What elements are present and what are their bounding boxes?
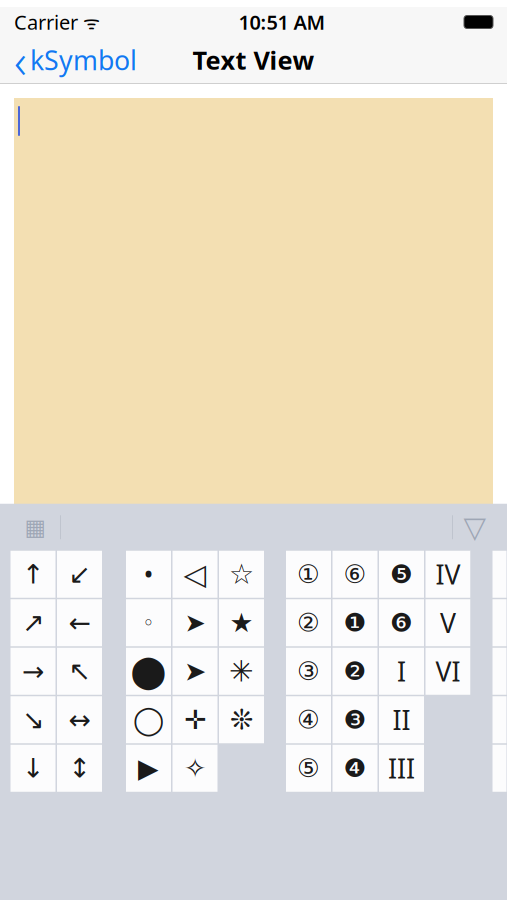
- button[interactable]: I: [379, 648, 424, 695]
- staticText: ↘: [22, 705, 44, 735]
- staticText: ②: [297, 608, 320, 637]
- button[interactable]: •: [126, 551, 171, 598]
- button[interactable]: ❶: [332, 599, 377, 646]
- button[interactable]: ➤: [172, 648, 217, 695]
- staticText: I: [397, 653, 406, 689]
- staticText: ❊: [230, 704, 253, 736]
- button[interactable]: ←: [57, 599, 102, 646]
- staticText: ↙: [68, 559, 90, 589]
- staticText: II: [392, 702, 410, 737]
- staticText: Carrier: [14, 9, 78, 35]
- button[interactable]: ↘: [10, 696, 55, 743]
- button[interactable]: ❺: [379, 551, 424, 598]
- staticText: ↓: [22, 753, 44, 783]
- button[interactable]: ↖: [57, 648, 102, 695]
- button[interactable]: ✧: [172, 745, 217, 792]
- staticText: ᯤ: [78, 10, 100, 34]
- staticText: ↔: [68, 705, 90, 735]
- staticText: III: [388, 750, 415, 786]
- staticText: ❶: [343, 608, 366, 637]
- button[interactable]: ↔: [57, 696, 102, 743]
- button[interactable]: ❻: [379, 599, 424, 646]
- button[interactable]: VI: [425, 648, 470, 695]
- button[interactable]: ◁: [172, 551, 217, 598]
- staticText: ❷: [343, 657, 366, 686]
- button[interactable]: →: [10, 648, 55, 695]
- button[interactable]: Hide keyboard: [453, 507, 497, 547]
- staticText: ←: [68, 608, 90, 638]
- staticText: ③: [297, 657, 320, 686]
- staticText: ⑤: [297, 754, 320, 783]
- button[interactable]: ‹: [0, 37, 147, 83]
- button[interactable]: ⑤: [286, 745, 331, 792]
- button[interactable]: ↙: [57, 551, 102, 598]
- staticText: →: [22, 656, 44, 686]
- button[interactable]: ↑: [10, 551, 55, 598]
- staticText: ◯: [133, 704, 164, 736]
- button[interactable]: ◯: [126, 696, 171, 743]
- button[interactable]: ③: [286, 648, 331, 695]
- button[interactable]: IV: [425, 551, 470, 598]
- button[interactable]: II: [379, 696, 424, 743]
- staticText: ◁: [183, 558, 206, 591]
- staticText: ➤: [184, 656, 206, 686]
- staticText: ↑: [22, 559, 44, 589]
- button[interactable]: ⬤: [126, 648, 171, 695]
- button[interactable]: ④: [286, 696, 331, 743]
- staticText: Text View: [192, 43, 314, 77]
- staticText: VI: [435, 653, 460, 689]
- staticText: ‹: [14, 28, 27, 92]
- staticText: ④: [297, 705, 320, 734]
- staticText: ▶: [138, 753, 159, 783]
- button[interactable]: ②: [286, 599, 331, 646]
- staticText: ↕: [68, 753, 90, 783]
- button[interactable]: ❸: [332, 696, 377, 743]
- staticText: V: [440, 605, 456, 640]
- staticText: ✧: [184, 753, 206, 783]
- button[interactable]: III: [379, 745, 424, 792]
- staticText: ↗: [22, 608, 44, 638]
- staticText: kSymbol: [30, 42, 137, 78]
- staticText: ★: [229, 608, 253, 638]
- button[interactable]: ☆: [219, 551, 264, 598]
- staticText: ⬤: [130, 653, 166, 689]
- staticText: ▦: [24, 514, 45, 540]
- staticText: ❸: [343, 705, 366, 734]
- staticText: ✳: [229, 655, 254, 688]
- button[interactable]: ❊: [219, 696, 264, 743]
- staticText: ⑥: [343, 560, 366, 589]
- staticText: ①: [297, 560, 320, 589]
- staticText: ❻: [390, 608, 413, 637]
- button[interactable]: ▶: [126, 745, 171, 792]
- staticText: ↖: [68, 656, 90, 686]
- staticText: •: [143, 556, 153, 592]
- button[interactable]: ↕: [57, 745, 102, 792]
- button[interactable]: ➤: [172, 599, 217, 646]
- staticText: ✛: [184, 705, 206, 735]
- button[interactable]: ↗: [10, 599, 55, 646]
- button[interactable]: ⑥: [332, 551, 377, 598]
- button[interactable]: ❷: [332, 648, 377, 695]
- button[interactable]: ❹: [332, 745, 377, 792]
- button[interactable]: Keyboard layout: [10, 507, 60, 547]
- button[interactable]: ✳: [219, 648, 264, 695]
- staticText: ▽: [463, 511, 486, 544]
- staticText: ☆: [229, 558, 254, 590]
- button[interactable]: ✛: [172, 696, 217, 743]
- staticText: IV: [435, 556, 460, 592]
- staticText: ❹: [343, 754, 366, 783]
- staticText: 10:51 AM: [238, 9, 325, 35]
- button[interactable]: ①: [286, 551, 331, 598]
- staticText: ❺: [390, 560, 413, 589]
- button[interactable]: ↓: [10, 745, 55, 792]
- staticText: ◦: [142, 611, 154, 634]
- staticText: ➤: [184, 608, 205, 637]
- button[interactable]: ◦: [126, 599, 171, 646]
- button[interactable]: ★: [219, 599, 264, 646]
- button[interactable]: V: [425, 599, 470, 646]
